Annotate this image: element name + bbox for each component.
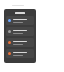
button[interactable]: item icon bbox=[6, 16, 34, 25]
other: item icon bbox=[8, 19, 11, 22]
button[interactable]: item icon bbox=[6, 27, 34, 36]
other: item icon bbox=[8, 52, 11, 55]
button[interactable]: item icon bbox=[6, 38, 34, 47]
other: item icon bbox=[8, 30, 11, 33]
other: item icon bbox=[8, 41, 11, 44]
button[interactable]: item icon bbox=[6, 49, 34, 58]
